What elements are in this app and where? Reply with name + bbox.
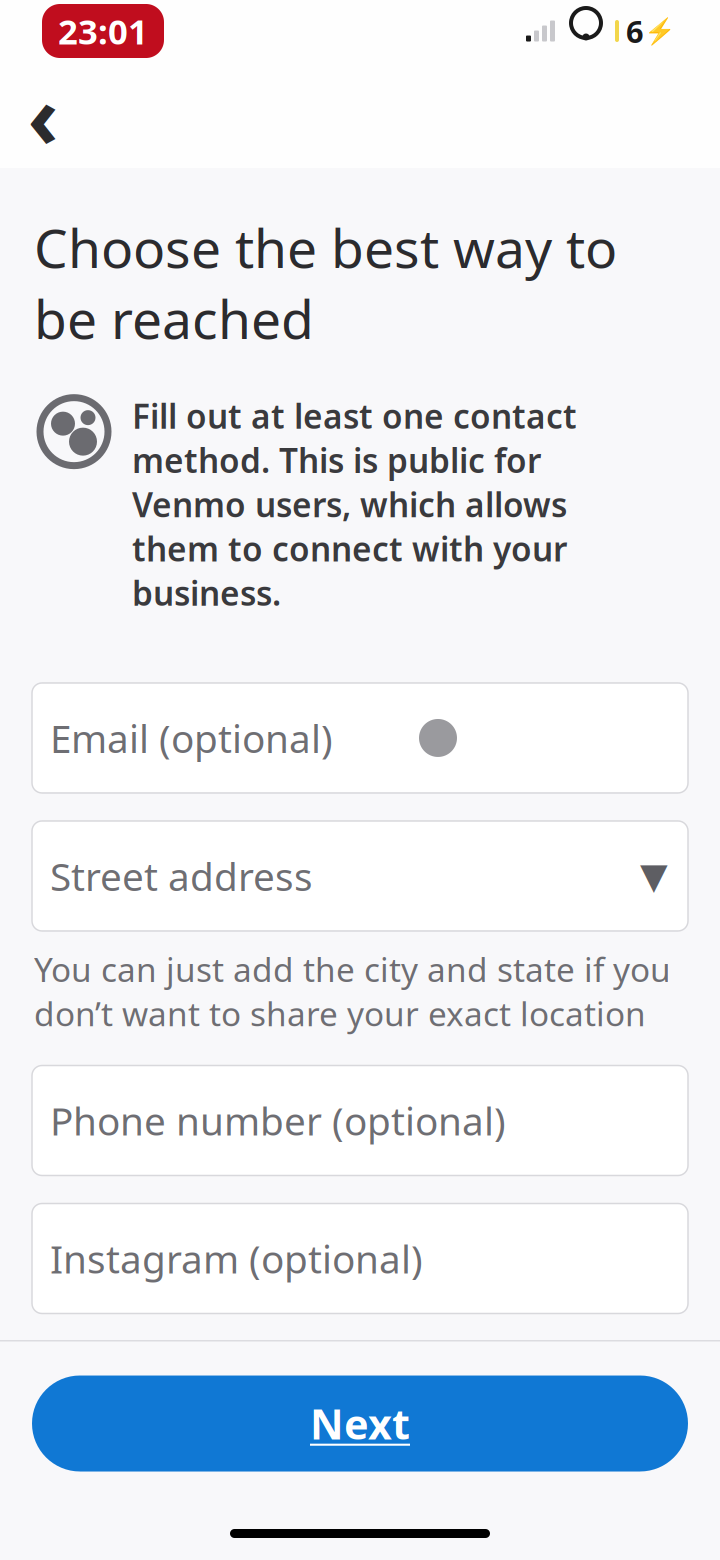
staticText: You can just add the city and state if y…	[34, 947, 671, 1035]
staticText: Email (optional)	[50, 712, 333, 764]
staticText: ▼	[640, 855, 668, 896]
staticText: Instagram (optional)	[50, 1233, 423, 1284]
staticText: ‹	[27, 58, 58, 172]
button[interactable]: Next	[32, 1375, 688, 1471]
staticText: Messenger (optional)	[50, 1371, 437, 1422]
button[interactable]: Street address	[32, 821, 688, 931]
staticText: 23:01	[58, 8, 148, 54]
staticText: Fill out at least one contact method. Th…	[132, 394, 577, 615]
staticText: Next	[310, 1396, 410, 1451]
button[interactable]: Phone number (optional)	[32, 1065, 688, 1175]
button[interactable]: Back	[0, 79, 76, 151]
staticText: 6	[626, 11, 644, 51]
staticText: Phone number (optional)	[50, 1095, 506, 1146]
button[interactable]: Instagram (optional)	[32, 1203, 688, 1313]
button[interactable]: Messenger (optional)	[32, 1341, 688, 1451]
staticText: Street address	[50, 850, 313, 902]
button[interactable]: Email (optional)	[32, 683, 688, 793]
staticText: ⚡	[644, 16, 676, 45]
staticText: Does your business have a website?	[34, 1485, 535, 1560]
staticText: Choose the best way to be reached	[34, 212, 617, 354]
